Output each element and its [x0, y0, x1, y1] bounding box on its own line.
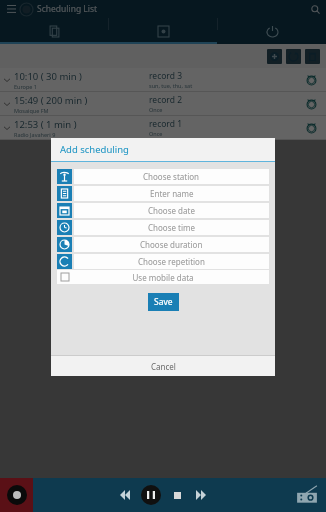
staticText: Europe 1	[14, 83, 38, 90]
button[interactable]: Choose date	[57, 203, 269, 218]
button[interactable]: Tab	[109, 18, 217, 44]
staticText: Add scheduling	[60, 143, 129, 156]
button[interactable]: Use mobile data	[57, 270, 269, 284]
button[interactable]: Choose repetition	[57, 254, 269, 269]
button[interactable]: Choose time	[57, 220, 269, 235]
staticText: 12:53 ( 1 min )	[14, 118, 77, 131]
button[interactable]: Tab	[0, 18, 108, 44]
staticText: Save	[154, 296, 173, 308]
staticText: Once	[149, 106, 163, 113]
staticText: Enter name	[150, 188, 194, 199]
button[interactable]: Search	[308, 2, 322, 16]
button[interactable]: Cancel	[51, 356, 275, 376]
staticText: Choose time	[148, 222, 196, 233]
button[interactable]: Add	[267, 49, 282, 64]
staticText: Once	[149, 130, 163, 137]
button[interactable]: Enter name	[57, 186, 269, 201]
button[interactable]: Record	[0, 478, 33, 512]
staticText: Choose date	[148, 205, 195, 216]
button[interactable]: Choose duration	[57, 237, 269, 252]
staticText: Choose repetition	[138, 256, 205, 267]
button[interactable]: Rewind	[117, 487, 133, 503]
button[interactable]: Stop	[169, 487, 185, 503]
button[interactable]: Alarm	[296, 116, 326, 139]
button[interactable]: Choose station	[57, 169, 269, 184]
staticText: Mosaique FM	[14, 107, 49, 114]
staticText: Use mobile data	[69, 272, 257, 283]
button[interactable]: 12:53 ( 1 min )	[0, 116, 326, 139]
button[interactable]: Refresh	[286, 49, 301, 64]
staticText: Scheduling List	[37, 3, 98, 15]
button[interactable]: Menu	[4, 2, 18, 16]
staticText: record 1	[149, 118, 182, 130]
staticText: record 2	[149, 94, 182, 106]
button[interactable]: Tab	[218, 18, 326, 44]
staticText: record 3	[149, 70, 182, 82]
button[interactable]: Pause	[141, 485, 161, 505]
staticText: sun, tue, thu, sat	[149, 82, 193, 89]
button[interactable]: Forward	[193, 487, 209, 503]
button[interactable]: Alarm	[296, 92, 326, 115]
staticText: Choose station	[143, 171, 200, 182]
staticText: 10:10 ( 30 min )	[14, 70, 82, 83]
staticText: Cancel	[151, 361, 176, 372]
button[interactable]: Save	[148, 293, 179, 311]
staticText: Radio Javaheri 9	[14, 131, 56, 138]
button[interactable]: Radio	[294, 482, 320, 508]
button[interactable]: 15:49 ( 200 min )	[0, 92, 326, 115]
staticText: Choose duration	[140, 239, 203, 250]
button[interactable]: Alarm	[296, 68, 326, 91]
button[interactable]: Delete	[305, 49, 320, 64]
staticText: 15:49 ( 200 min )	[14, 94, 88, 107]
button[interactable]: 10:10 ( 30 min )	[0, 68, 326, 91]
